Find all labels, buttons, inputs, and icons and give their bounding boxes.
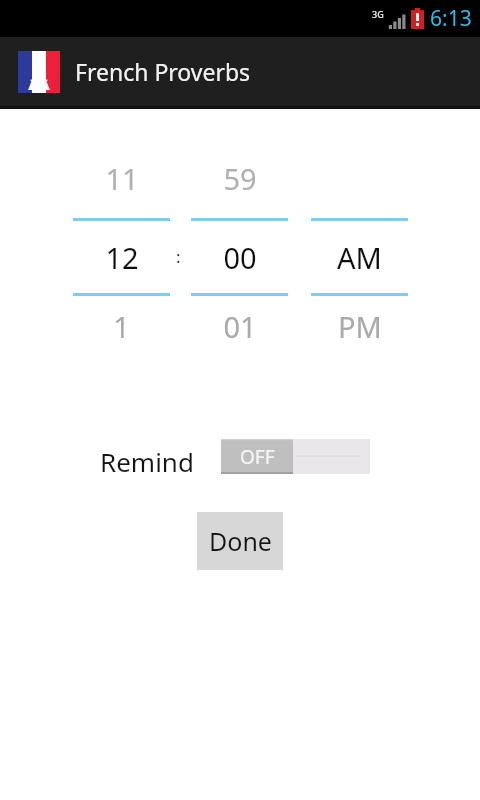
- staticText: 00: [223, 238, 257, 277]
- staticText: 1: [113, 307, 130, 346]
- staticText: OFF: [240, 444, 275, 470]
- staticText: 59: [223, 159, 257, 198]
- staticText: 12: [105, 238, 139, 277]
- staticText: Remind: [100, 444, 194, 479]
- staticText: 11: [105, 159, 139, 198]
- button[interactable]: AM: [311, 151, 408, 361]
- staticText: 6:13: [430, 4, 472, 33]
- staticText: PM: [338, 307, 382, 346]
- button[interactable]: 59: [191, 151, 288, 361]
- button[interactable]: 11: [73, 151, 170, 361]
- staticText: :: [176, 245, 181, 268]
- button[interactable]: Done: [197, 512, 283, 570]
- staticText: 01: [223, 307, 257, 346]
- button[interactable]: Remind toggle, off: [221, 439, 370, 474]
- staticText: 3G: [372, 8, 384, 20]
- staticText: Done: [209, 524, 272, 558]
- staticText: French Proverbs: [75, 56, 251, 87]
- staticText: AM: [337, 238, 382, 277]
